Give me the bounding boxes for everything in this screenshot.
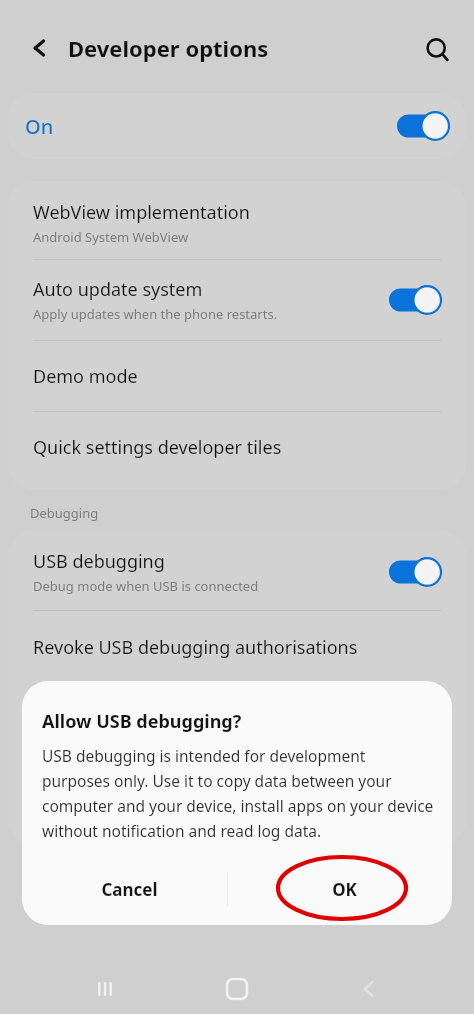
staticText: Debug mode when USB is connected [33,577,259,595]
staticText: WebView implementation [33,200,250,225]
button[interactable]: Recent apps [80,964,130,1014]
button[interactable]: OK [237,853,452,925]
button[interactable]: Demo mode [8,341,466,411]
button[interactable]: Switch on [389,557,441,587]
button[interactable]: Switch on [389,285,441,315]
button[interactable]: Revoke USB debugging authorisations [8,611,466,683]
button[interactable]: On [8,93,466,159]
button[interactable]: Home [211,964,263,1014]
staticText: Auto update system [33,277,203,302]
staticText: Allow USB debugging? [42,709,242,734]
staticText: Revoke USB debugging authorisations [33,635,358,660]
button[interactable]: WebView implementation [8,187,466,259]
staticText: OK [332,878,357,901]
staticText: Cancel [101,878,158,901]
staticText: reconnected within the default (7 days) … [33,804,288,822]
staticText: Disable adb authorisation timeout [33,776,322,801]
button[interactable]: Auto update system [8,260,466,340]
staticText: Quick settings developer tiles [33,435,282,460]
staticText: Developer options [68,33,269,63]
button[interactable]: Switch on [397,111,449,141]
staticText: Wireless debugging [33,699,201,724]
button[interactable]: Quick settings developer tiles [8,412,466,482]
button[interactable]: USB debugging [8,534,466,610]
staticText: USB debugging is intended for developmen… [42,745,434,841]
button[interactable]: Switch off [389,784,441,814]
staticText: Android System WebView [33,228,189,246]
staticText: Debugging [30,504,99,522]
staticText: Apply updates when the phone restarts. [33,305,278,323]
button[interactable]: Wireless debugging [8,684,466,760]
staticText: Demo mode [33,364,138,389]
staticText: USB debugging [33,549,165,574]
staticText: Debug mode when Wi-Fi is connected [33,727,263,745]
button[interactable]: Cancel [22,853,237,925]
button[interactable]: Disable adb authorisation timeout [8,761,466,837]
button[interactable]: Search [416,28,460,72]
staticText: On [25,113,397,140]
button[interactable]: Back [20,28,60,68]
